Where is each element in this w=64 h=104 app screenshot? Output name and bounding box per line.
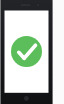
button[interactable]: Success bbox=[11, 36, 42, 67]
